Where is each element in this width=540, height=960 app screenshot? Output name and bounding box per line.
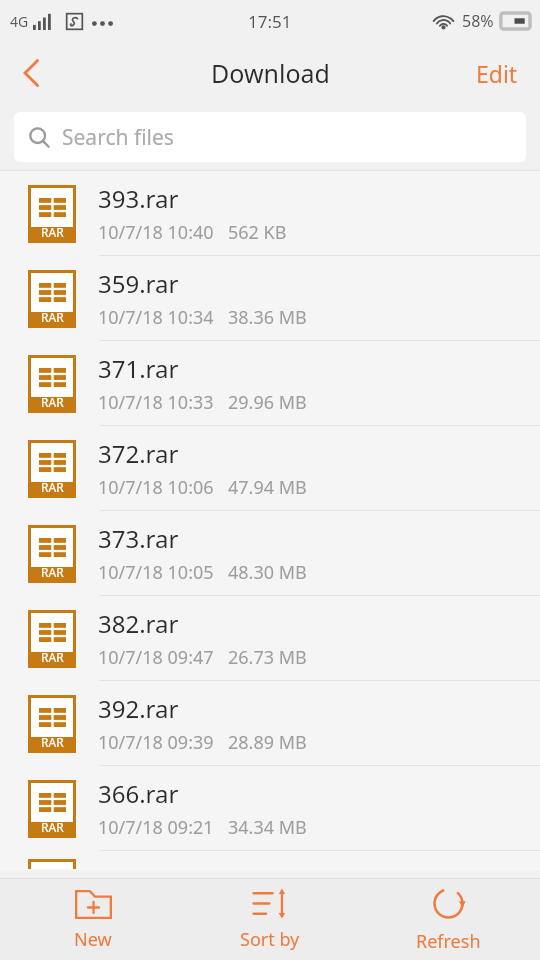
staticText: 10/7/18 10:06 — [98, 475, 214, 500]
staticText: 10/7/18 09:39 — [98, 730, 214, 755]
staticText: RAR — [41, 224, 64, 240]
button[interactable]: RAR — [0, 596, 540, 681]
staticText: RAR — [41, 734, 64, 750]
button[interactable]: RAR — [0, 256, 540, 341]
staticText: 359.rar — [98, 267, 179, 300]
staticText: 10/7/18 10:33 — [98, 390, 214, 415]
staticText: 392.rar — [98, 692, 179, 725]
staticText: RAR — [41, 394, 64, 410]
button[interactable]: Refresh — [363, 879, 533, 960]
staticText: Download — [211, 56, 330, 90]
staticText: RAR — [41, 649, 64, 665]
staticText: 372.rar — [98, 437, 179, 470]
staticText: 28.89 MB — [228, 730, 307, 755]
staticText: 10/7/18 10:05 — [98, 560, 214, 585]
staticText: 10/7/18 09:21 — [98, 815, 214, 840]
staticText: 10/7/18 10:40 — [98, 220, 214, 245]
staticText: 17:51 — [248, 10, 292, 33]
staticText: 373.rar — [98, 522, 179, 555]
staticText: Refresh — [416, 929, 481, 953]
staticText: RAR — [41, 819, 64, 835]
button[interactable] — [0, 851, 540, 871]
staticText: 393.rar — [98, 182, 179, 215]
staticText: 58% — [462, 10, 494, 32]
staticText: 4G — [10, 12, 29, 31]
staticText: Search files — [62, 123, 174, 152]
button[interactable]: RAR — [0, 426, 540, 511]
staticText: 366.rar — [98, 777, 179, 810]
staticText: 382.rar — [98, 607, 179, 640]
button[interactable]: RAR — [0, 341, 540, 426]
staticText: Sort by — [240, 927, 300, 952]
staticText: 47.94 MB — [228, 475, 307, 500]
button[interactable]: RAR — [0, 171, 540, 256]
button[interactable]: RAR — [0, 511, 540, 596]
staticText: 26.73 MB — [228, 645, 307, 670]
staticText: Edit — [476, 58, 518, 89]
staticText: 34.34 MB — [228, 815, 307, 840]
staticText: 29.96 MB — [228, 390, 307, 415]
staticText: 562 KB — [228, 220, 287, 245]
staticText: 48.30 MB — [228, 560, 307, 585]
staticText: 371.rar — [98, 352, 179, 385]
staticText: RAR — [41, 564, 64, 580]
staticText: 38.36 MB — [228, 305, 307, 330]
button[interactable]: RAR — [0, 681, 540, 766]
button[interactable]: RAR — [0, 766, 540, 851]
button[interactable]: Sort by — [185, 881, 355, 959]
staticText: New — [74, 927, 112, 952]
staticText: RAR — [41, 479, 64, 495]
staticText: 10/7/18 09:47 — [98, 645, 214, 670]
staticText: RAR — [41, 309, 64, 325]
button[interactable]: New — [8, 881, 178, 959]
button[interactable]: Back — [0, 42, 62, 104]
button[interactable]: Edit — [454, 42, 540, 104]
staticText: 10/7/18 10:34 — [98, 305, 214, 330]
button[interactable]: Search files — [14, 112, 526, 162]
